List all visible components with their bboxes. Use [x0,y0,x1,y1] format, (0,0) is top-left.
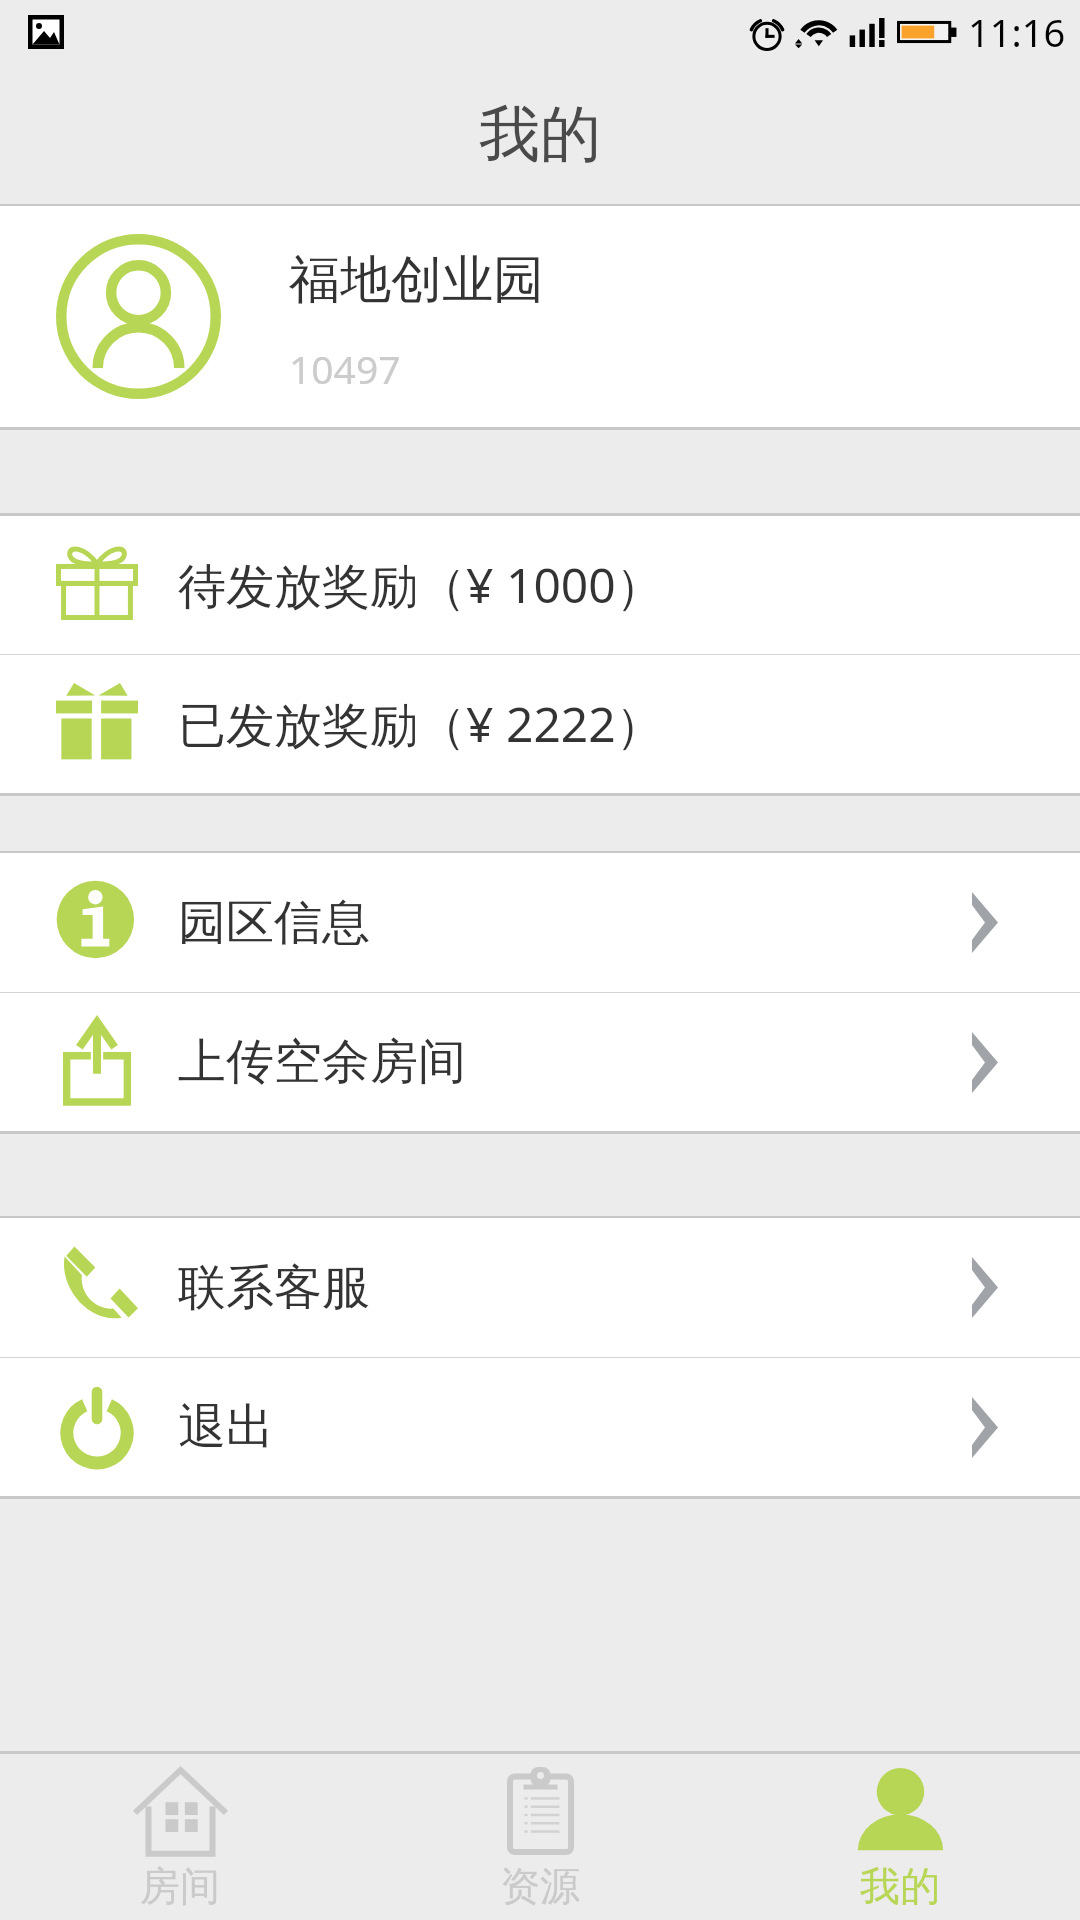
button[interactable]: 我的 [720,1754,1080,1920]
staticText: 退出 [178,1397,274,1457]
staticText: 房间 [140,1861,220,1911]
button[interactable]: 园区信息 [0,853,1080,992]
button[interactable]: 资源 [360,1754,720,1920]
button[interactable]: 退出 [0,1358,1080,1496]
staticText: 待发放奖励（¥ 1000） [178,552,664,618]
staticText: 联系客服 [178,1258,370,1318]
button[interactable]: 福地创业园 [0,206,1080,427]
button[interactable]: 房间 [0,1754,360,1920]
staticText: 园区信息 [178,893,370,953]
staticText: 我的 [860,1861,940,1911]
staticText: 上传空余房间 [178,1032,466,1092]
button[interactable]: 待发放奖励（¥ 1000） [0,516,1080,654]
staticText: 11:16 [968,6,1066,58]
staticText: 已发放奖励（¥ 2222） [178,691,664,757]
staticText: 资源 [500,1861,580,1911]
button[interactable]: 已发放奖励（¥ 2222） [0,655,1080,793]
staticText: 我的 [479,96,601,173]
button[interactable]: 联系客服 [0,1218,1080,1357]
staticText: 福地创业园 [289,248,544,312]
staticText: 10497 [289,342,401,395]
button[interactable]: 上传空余房间 [0,993,1080,1131]
